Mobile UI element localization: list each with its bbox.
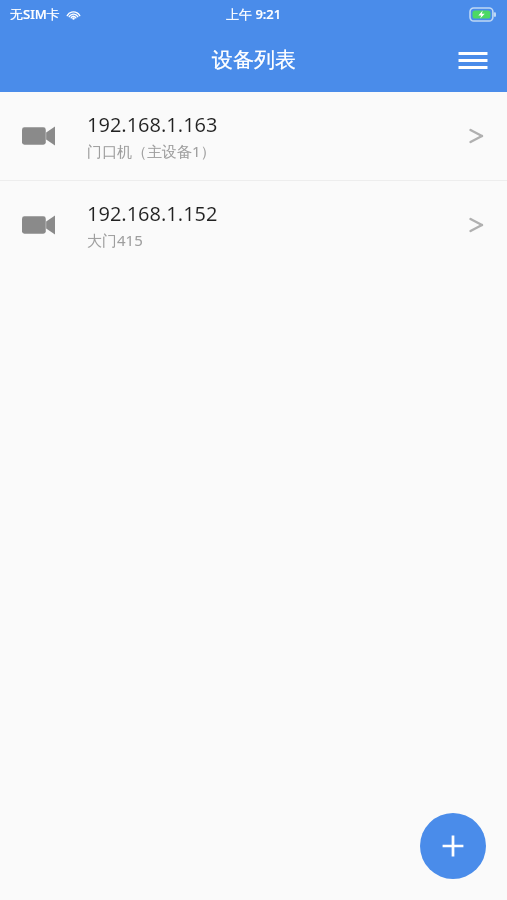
button[interactable]: 192.168.1.163	[0, 92, 507, 180]
staticText: 192.168.1.163	[87, 111, 218, 138]
staticText: 大门415	[87, 230, 143, 250]
button[interactable]: Menu	[449, 36, 497, 84]
staticText: 设备列表	[212, 47, 296, 73]
staticText: 上午 9:21	[226, 5, 282, 23]
staticText: 门口机（主设备1）	[87, 141, 216, 161]
staticText: 无SIM卡	[10, 5, 60, 23]
button[interactable]: Add device	[420, 813, 486, 879]
button[interactable]: 192.168.1.152	[0, 181, 507, 269]
staticText: 192.168.1.152	[87, 200, 218, 227]
